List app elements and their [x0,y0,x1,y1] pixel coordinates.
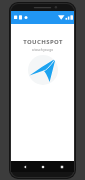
button[interactable]: Recent apps [56,161,67,172]
button[interactable]: Back [19,161,30,172]
staticText: TOUCHSPOT [23,38,63,46]
button[interactable]: TouchSpot logo [28,55,58,85]
button[interactable]: Home [37,161,48,172]
staticText: a touch you go [32,48,53,52]
